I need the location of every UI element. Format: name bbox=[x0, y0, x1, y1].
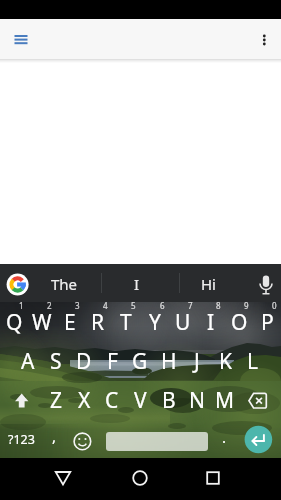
staticText: T bbox=[120, 308, 132, 337]
staticText: I bbox=[207, 308, 215, 337]
button[interactable]: S bbox=[42, 342, 70, 381]
button[interactable] bbox=[97, 420, 212, 459]
button[interactable]: D bbox=[70, 342, 98, 381]
staticText: P bbox=[261, 308, 274, 337]
button[interactable]: . bbox=[212, 417, 237, 456]
staticText: E bbox=[64, 308, 76, 337]
button[interactable] bbox=[239, 381, 281, 420]
button[interactable] bbox=[43, 458, 83, 500]
staticText: R bbox=[91, 308, 105, 337]
button[interactable]: M bbox=[211, 381, 239, 420]
button[interactable] bbox=[68, 420, 97, 459]
staticText: H bbox=[161, 347, 177, 376]
button[interactable]: U bbox=[169, 303, 197, 342]
staticText: ?123 bbox=[8, 431, 35, 448]
staticText: Z bbox=[50, 386, 63, 415]
staticText: V bbox=[134, 386, 147, 415]
staticText: 9 bbox=[244, 300, 249, 311]
button[interactable]: C bbox=[98, 381, 126, 420]
staticText: 5 bbox=[131, 300, 136, 311]
staticText: Y bbox=[149, 308, 161, 337]
staticText: 3 bbox=[75, 300, 80, 311]
button[interactable]: A bbox=[14, 342, 42, 381]
button[interactable]: K bbox=[211, 342, 239, 381]
button[interactable]: I bbox=[109, 270, 165, 298]
staticText: 6 bbox=[160, 300, 165, 311]
button[interactable]: G bbox=[126, 342, 154, 381]
staticText: The bbox=[51, 274, 78, 294]
button[interactable]: O bbox=[225, 303, 253, 342]
staticText: O bbox=[231, 308, 248, 337]
staticText: K bbox=[219, 347, 232, 376]
staticText: I bbox=[134, 274, 140, 294]
button[interactable]: Q bbox=[0, 303, 28, 342]
button[interactable] bbox=[237, 420, 281, 459]
staticText: 8 bbox=[216, 300, 221, 311]
button[interactable]: B bbox=[155, 381, 183, 420]
staticText: A bbox=[21, 347, 35, 376]
staticText: G bbox=[132, 347, 148, 376]
staticText: C bbox=[105, 386, 119, 415]
staticText: J bbox=[194, 347, 200, 376]
staticText: M bbox=[215, 386, 235, 415]
button[interactable]: F bbox=[98, 342, 126, 381]
button[interactable]: Z bbox=[42, 381, 70, 420]
staticText: Hi bbox=[201, 274, 216, 294]
button[interactable]: ?123 bbox=[0, 420, 42, 459]
button[interactable] bbox=[252, 28, 276, 52]
button[interactable]: V bbox=[126, 381, 154, 420]
staticText: 7 bbox=[188, 300, 193, 311]
button[interactable]: , bbox=[42, 416, 67, 455]
staticText: L bbox=[247, 347, 259, 376]
button[interactable]: P bbox=[253, 303, 281, 342]
button[interactable]: L bbox=[239, 342, 267, 381]
staticText: D bbox=[76, 347, 92, 376]
button[interactable]: Hi bbox=[184, 270, 232, 298]
button[interactable]: I bbox=[197, 303, 225, 342]
button[interactable]: X bbox=[70, 381, 98, 420]
staticText: B bbox=[162, 386, 176, 415]
button[interactable]: W bbox=[28, 303, 56, 342]
staticText: W bbox=[32, 308, 52, 337]
staticText: N bbox=[189, 386, 205, 415]
staticText: X bbox=[78, 386, 91, 415]
staticText: S bbox=[50, 347, 62, 376]
button[interactable] bbox=[0, 381, 42, 420]
staticText: 1 bbox=[19, 300, 24, 311]
button[interactable]: J bbox=[183, 342, 211, 381]
button[interactable] bbox=[193, 458, 233, 500]
button[interactable]: H bbox=[155, 342, 183, 381]
staticText: U bbox=[175, 308, 191, 337]
button[interactable]: N bbox=[183, 381, 211, 420]
staticText: , bbox=[52, 426, 57, 446]
button[interactable]: E bbox=[56, 303, 84, 342]
staticText: 4 bbox=[103, 300, 108, 311]
staticText: 2 bbox=[47, 300, 52, 311]
button[interactable]: Y bbox=[141, 303, 169, 342]
button[interactable] bbox=[8, 26, 34, 52]
staticText: Q bbox=[6, 308, 23, 337]
staticText: F bbox=[107, 347, 118, 376]
staticText: 0 bbox=[272, 300, 277, 311]
button[interactable] bbox=[120, 458, 160, 500]
staticText: . bbox=[222, 427, 227, 447]
button[interactable]: T bbox=[112, 303, 140, 342]
button[interactable]: R bbox=[84, 303, 112, 342]
button[interactable]: The bbox=[38, 270, 90, 298]
